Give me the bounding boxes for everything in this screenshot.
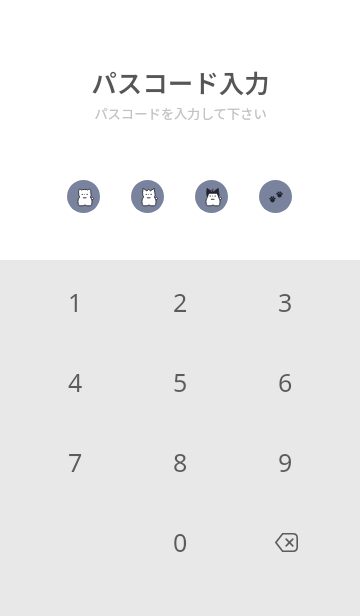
staticText: 2 bbox=[173, 285, 188, 319]
button[interactable]: 9 bbox=[233, 422, 338, 502]
button[interactable]: 5 bbox=[128, 342, 233, 422]
staticText: パスコードを入力して下さい bbox=[94, 104, 267, 123]
button[interactable]: 8 bbox=[128, 422, 233, 502]
button[interactable]: Passcode digit 1 bbox=[67, 180, 100, 213]
staticText: 6 bbox=[278, 365, 293, 399]
staticText: 9 bbox=[278, 445, 293, 479]
button[interactable]: 7 bbox=[23, 422, 128, 502]
staticText: 5 bbox=[173, 365, 188, 399]
staticText: 7 bbox=[68, 445, 83, 479]
button[interactable]: 6 bbox=[233, 342, 338, 422]
staticText: 8 bbox=[173, 445, 188, 479]
button[interactable]: 3 bbox=[233, 262, 338, 342]
button[interactable]: 1 bbox=[23, 262, 128, 342]
button[interactable]: Backspace bbox=[233, 502, 338, 582]
button[interactable]: 2 bbox=[128, 262, 233, 342]
staticText: 0 bbox=[173, 525, 188, 559]
staticText: 4 bbox=[68, 365, 83, 399]
button[interactable]: Passcode digit 2 bbox=[131, 180, 164, 213]
button[interactable]: 0 bbox=[128, 502, 233, 582]
staticText: パスコード入力 bbox=[91, 63, 270, 100]
button[interactable]: Passcode digit 4 bbox=[259, 180, 292, 213]
button[interactable]: Passcode digit 3 bbox=[195, 180, 228, 213]
staticText: 3 bbox=[278, 285, 293, 319]
staticText: 1 bbox=[68, 285, 83, 319]
button[interactable]: 4 bbox=[23, 342, 128, 422]
